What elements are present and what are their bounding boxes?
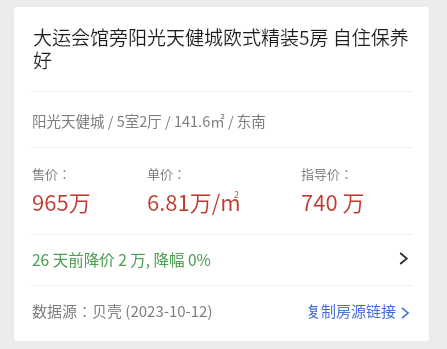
other: Copy listing link: [399, 303, 411, 319]
staticText: 6.81万/m: [147, 185, 241, 217]
staticText: 指导价：: [301, 164, 354, 183]
staticText: 售价：: [32, 164, 72, 183]
staticText: 2: [234, 188, 239, 201]
staticText: 单价：: [147, 164, 187, 183]
staticText: 复制房源链接: [306, 300, 397, 322]
staticText: 965万: [32, 185, 91, 217]
staticText: 大运会馆旁阳光天健城欧式精装5房 自住保养好: [33, 23, 412, 74]
staticText: 阳光天健城 / 5室2厅 / 141.6㎡ / 东南: [32, 110, 266, 131]
button[interactable]: 26 天前降价 2 万, 降幅 0%: [14, 235, 429, 285]
button[interactable]: 大运会馆旁阳光天健城欧式精装5房 自住保养好: [14, 7, 429, 341]
staticText: 数据源：贝壳 (2023-10-12): [32, 300, 213, 322]
other: Price history: [397, 251, 410, 268]
staticText: 740 万: [301, 185, 365, 217]
button[interactable]: 复制房源链接: [306, 300, 411, 322]
staticText: 26 天前降价 2 万, 降幅 0%: [32, 248, 211, 270]
